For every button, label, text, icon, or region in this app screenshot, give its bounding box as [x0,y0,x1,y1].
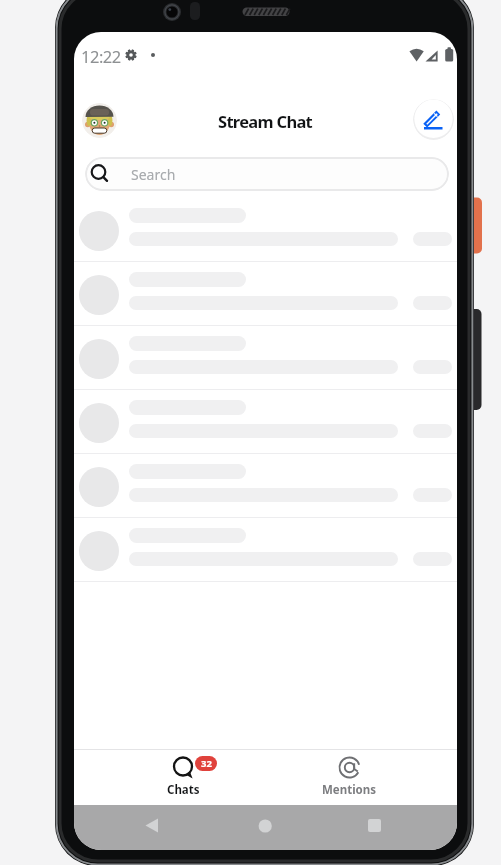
button[interactable] [136,811,166,841]
button[interactable]: 32 [162,750,220,805]
button[interactable] [74,518,457,582]
button[interactable] [82,103,117,138]
button[interactable] [413,99,454,140]
staticText: Mentions [322,782,377,798]
staticText: Search [131,165,176,184]
button[interactable] [74,454,457,518]
button[interactable] [74,198,457,262]
button[interactable]: Mentions [319,750,379,805]
button[interactable] [359,811,389,841]
button[interactable] [74,390,457,454]
button[interactable] [74,262,457,326]
staticText: 12:22 [81,45,121,67]
staticText: Chats [167,782,200,798]
button[interactable] [74,326,457,390]
staticText: Stream Chat [218,110,313,132]
button[interactable]: Search [85,157,449,191]
staticText: 32 [201,757,212,770]
button[interactable] [250,811,280,841]
